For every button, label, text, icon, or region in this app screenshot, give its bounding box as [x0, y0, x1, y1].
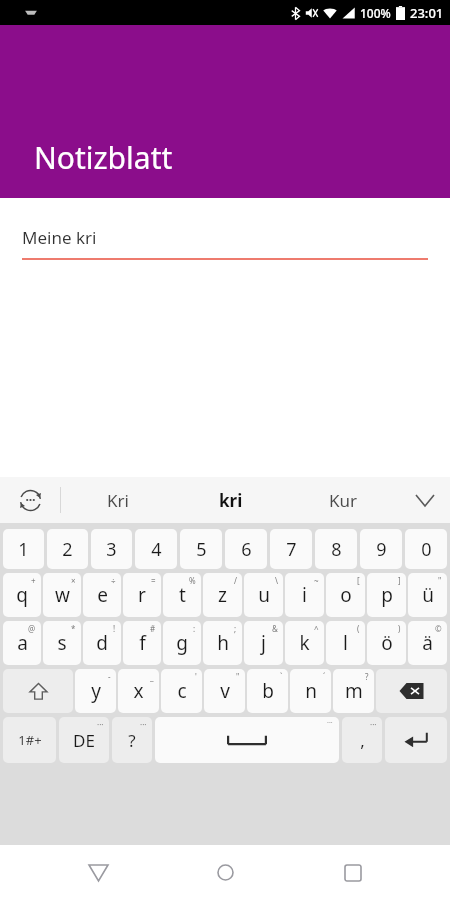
staticText: ! — [113, 623, 116, 634]
button[interactable]: ' — [161, 669, 202, 713]
staticText: s — [57, 630, 67, 656]
staticText: y — [91, 678, 101, 704]
staticText: p — [381, 582, 393, 608]
button[interactable]: Emoji — [0, 477, 60, 523]
button[interactable]: Meine kri — [22, 226, 428, 260]
staticText: 4 — [151, 537, 162, 562]
staticText: j — [261, 630, 266, 656]
button[interactable]: × — [43, 573, 81, 617]
button[interactable]: Backspace — [376, 669, 447, 713]
button[interactable]: Home — [195, 845, 255, 900]
staticText: ) — [398, 623, 401, 634]
staticText: c — [177, 678, 187, 704]
button[interactable]: kri — [174, 477, 287, 523]
staticText: k — [299, 630, 310, 656]
button[interactable]: 0 — [405, 529, 447, 569]
button[interactable]: ^ — [285, 621, 324, 665]
button[interactable]: Language — [59, 717, 109, 763]
button[interactable]: 9 — [360, 529, 402, 569]
button[interactable]: " — [408, 573, 447, 617]
staticText: - — [108, 671, 111, 682]
button[interactable]: ´ — [290, 669, 331, 713]
staticText: , — [360, 729, 365, 752]
staticText: ü — [422, 582, 434, 608]
button[interactable]: 8 — [315, 529, 357, 569]
staticText: " — [438, 575, 442, 586]
button[interactable]: + — [3, 573, 41, 617]
button[interactable]: ! — [83, 621, 121, 665]
button[interactable]: ) — [367, 621, 406, 665]
staticText: i — [302, 582, 307, 608]
staticText: Kri — [107, 489, 129, 512]
button[interactable]: Expand suggestions — [400, 477, 450, 523]
button[interactable]: Back — [68, 845, 128, 900]
button[interactable]: = — [123, 573, 161, 617]
button[interactable]: © — [408, 621, 447, 665]
staticText: ··· — [97, 719, 104, 730]
button[interactable]: " — [204, 669, 245, 713]
staticText: ö — [381, 630, 393, 656]
staticText: b — [262, 678, 274, 704]
staticText: v — [220, 678, 230, 704]
button[interactable]: ; — [203, 621, 242, 665]
staticText: ? — [365, 671, 369, 682]
button[interactable]: ` — [247, 669, 288, 713]
staticText: % — [189, 575, 196, 586]
button[interactable]: ] — [367, 573, 406, 617]
staticText: d — [96, 630, 108, 656]
button[interactable]: [ — [326, 573, 365, 617]
staticText: _ — [150, 671, 154, 682]
button[interactable]: Comma — [342, 717, 382, 763]
button[interactable]: Recents — [323, 845, 383, 900]
button[interactable]: Punctuation — [112, 717, 152, 763]
button[interactable]: - — [75, 669, 116, 713]
button[interactable]: _ — [118, 669, 159, 713]
button[interactable]: 4 — [135, 529, 177, 569]
staticText: # — [150, 623, 156, 634]
button[interactable]: ~ — [285, 573, 324, 617]
button[interactable]: 1 — [3, 529, 44, 569]
staticText: & — [272, 623, 278, 634]
button[interactable]: % — [163, 573, 201, 617]
button[interactable]: ? — [333, 669, 374, 713]
button[interactable]: 3 — [91, 529, 132, 569]
staticText: ÷ — [111, 575, 116, 586]
button[interactable]: # — [123, 621, 161, 665]
button[interactable]: * — [43, 621, 81, 665]
staticText: @ — [28, 623, 36, 634]
staticText: DE — [73, 729, 95, 752]
button[interactable]: 2 — [47, 529, 88, 569]
button[interactable]: Kur — [287, 477, 400, 523]
staticText: 0 — [421, 537, 432, 562]
staticText: a — [17, 630, 28, 656]
button[interactable]: & — [244, 621, 283, 665]
staticText: * — [71, 623, 76, 634]
staticText: 9 — [376, 537, 387, 562]
staticText: " — [236, 671, 240, 682]
staticText: 6 — [241, 537, 252, 562]
button[interactable]: Space — [155, 717, 339, 763]
button[interactable]: : — [163, 621, 201, 665]
button[interactable]: / — [203, 573, 242, 617]
button[interactable]: @ — [3, 621, 41, 665]
staticText: Notizblatt — [34, 137, 173, 178]
staticText: r — [138, 582, 146, 608]
staticText: ä — [422, 630, 433, 656]
button[interactable]: Symbols — [3, 717, 56, 763]
button[interactable]: Kri — [61, 477, 174, 523]
staticText: x — [133, 678, 144, 704]
button[interactable]: 6 — [225, 529, 267, 569]
staticText: h — [217, 630, 229, 656]
button[interactable]: Shift — [3, 669, 73, 713]
staticText: ··· — [370, 719, 377, 730]
staticText: : — [193, 623, 196, 634]
staticText: f — [139, 630, 146, 656]
button[interactable]: Enter — [385, 717, 447, 763]
button[interactable]: ( — [326, 621, 365, 665]
button[interactable]: \ — [244, 573, 283, 617]
staticText: t — [179, 582, 186, 608]
button[interactable]: ÷ — [83, 573, 121, 617]
button[interactable]: 7 — [270, 529, 312, 569]
button[interactable]: 5 — [180, 529, 222, 569]
staticText: = — [151, 575, 156, 586]
